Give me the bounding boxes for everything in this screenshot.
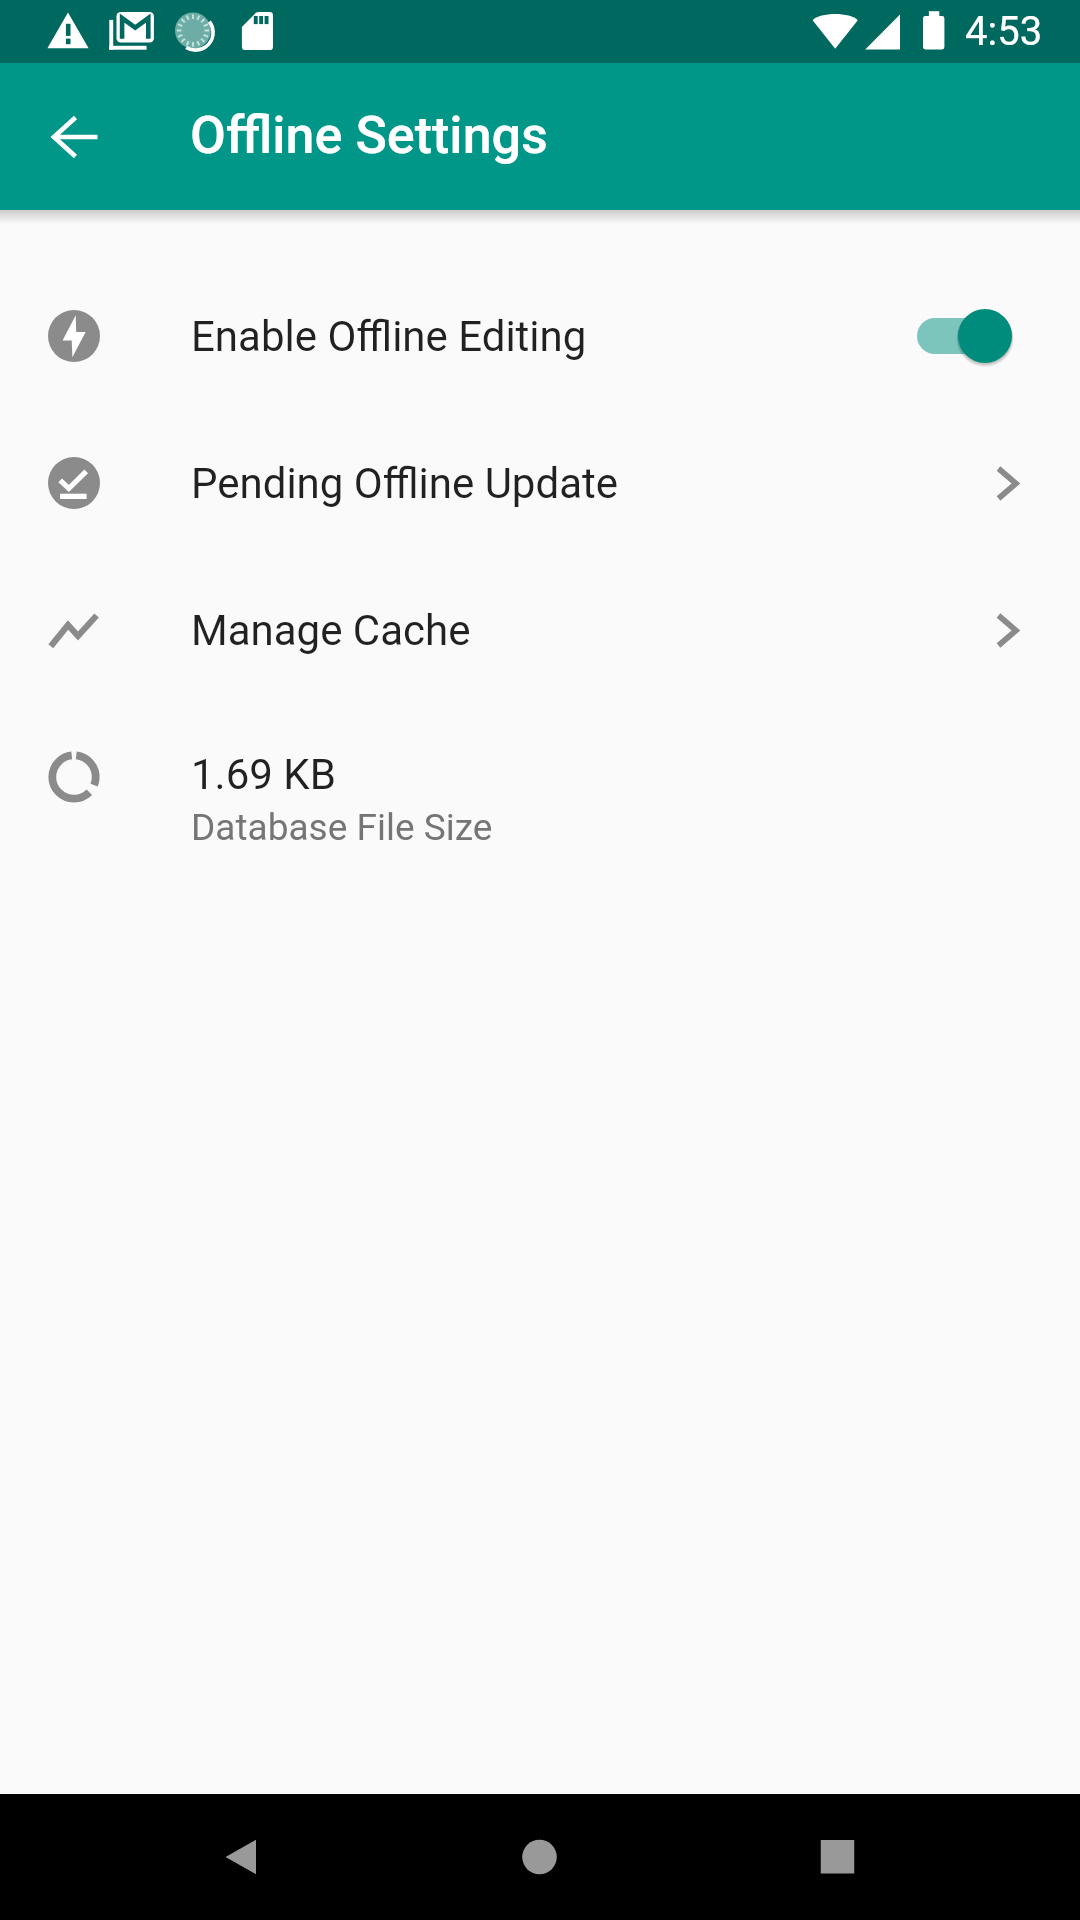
button[interactable]: 1.69 KB — [0, 729, 1080, 825]
staticText: Manage Cache — [191, 606, 471, 655]
button[interactable]: Recent apps — [778, 1794, 898, 1920]
staticText: 1.69 KB — [191, 750, 336, 799]
staticText: Database File Size — [191, 806, 493, 846]
button[interactable]: Enable Offline Editing — [0, 288, 1080, 384]
staticText: 4:53 — [965, 8, 1043, 55]
button[interactable]: Home — [480, 1794, 600, 1920]
button[interactable]: Back — [183, 1794, 303, 1920]
button[interactable]: Pending Offline Update — [0, 435, 1080, 531]
button[interactable]: Manage Cache — [0, 582, 1080, 678]
button[interactable]: Back — [26, 89, 122, 185]
staticText: Pending Offline Update — [191, 459, 618, 508]
staticText: Enable Offline Editing — [191, 312, 587, 361]
staticText: Offline Settings — [190, 105, 548, 166]
